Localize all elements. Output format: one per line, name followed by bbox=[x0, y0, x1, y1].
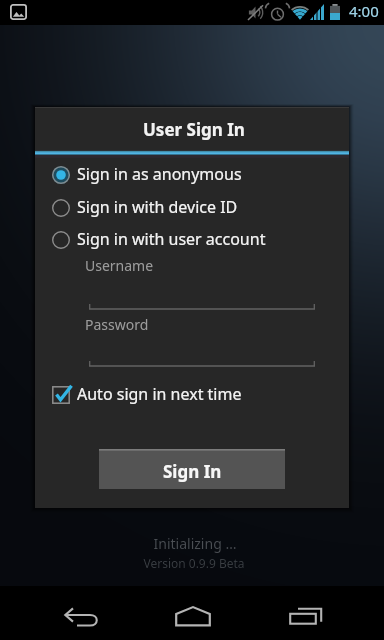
button[interactable]: Sign in as anonymous bbox=[45, 159, 325, 191]
staticText: Username bbox=[85, 256, 154, 275]
staticText: Sign in as anonymous bbox=[77, 163, 242, 185]
staticText: Sign in with user account bbox=[77, 228, 266, 250]
staticText: Initializing … bbox=[3, 534, 384, 553]
staticText: Sign In bbox=[163, 460, 222, 483]
staticText: User Sign In bbox=[143, 118, 245, 141]
button[interactable]: Sign in with user account bbox=[45, 224, 325, 256]
staticText: Auto sign in next time bbox=[77, 383, 242, 405]
staticText: Sign in with device ID bbox=[77, 196, 238, 218]
button[interactable]: Auto sign in next time bbox=[45, 379, 325, 411]
button[interactable]: Sign in with device ID bbox=[45, 192, 325, 224]
button[interactable]: Sign In bbox=[99, 449, 285, 489]
staticText: Version 0.9.9 Beta bbox=[2, 555, 384, 571]
staticText: 4:00 bbox=[349, 1, 379, 21]
button[interactable]: Recent apps bbox=[256, 586, 352, 640]
button[interactable]: Back bbox=[32, 586, 128, 640]
button[interactable]: Home bbox=[144, 586, 240, 640]
staticText: Password bbox=[85, 315, 149, 334]
